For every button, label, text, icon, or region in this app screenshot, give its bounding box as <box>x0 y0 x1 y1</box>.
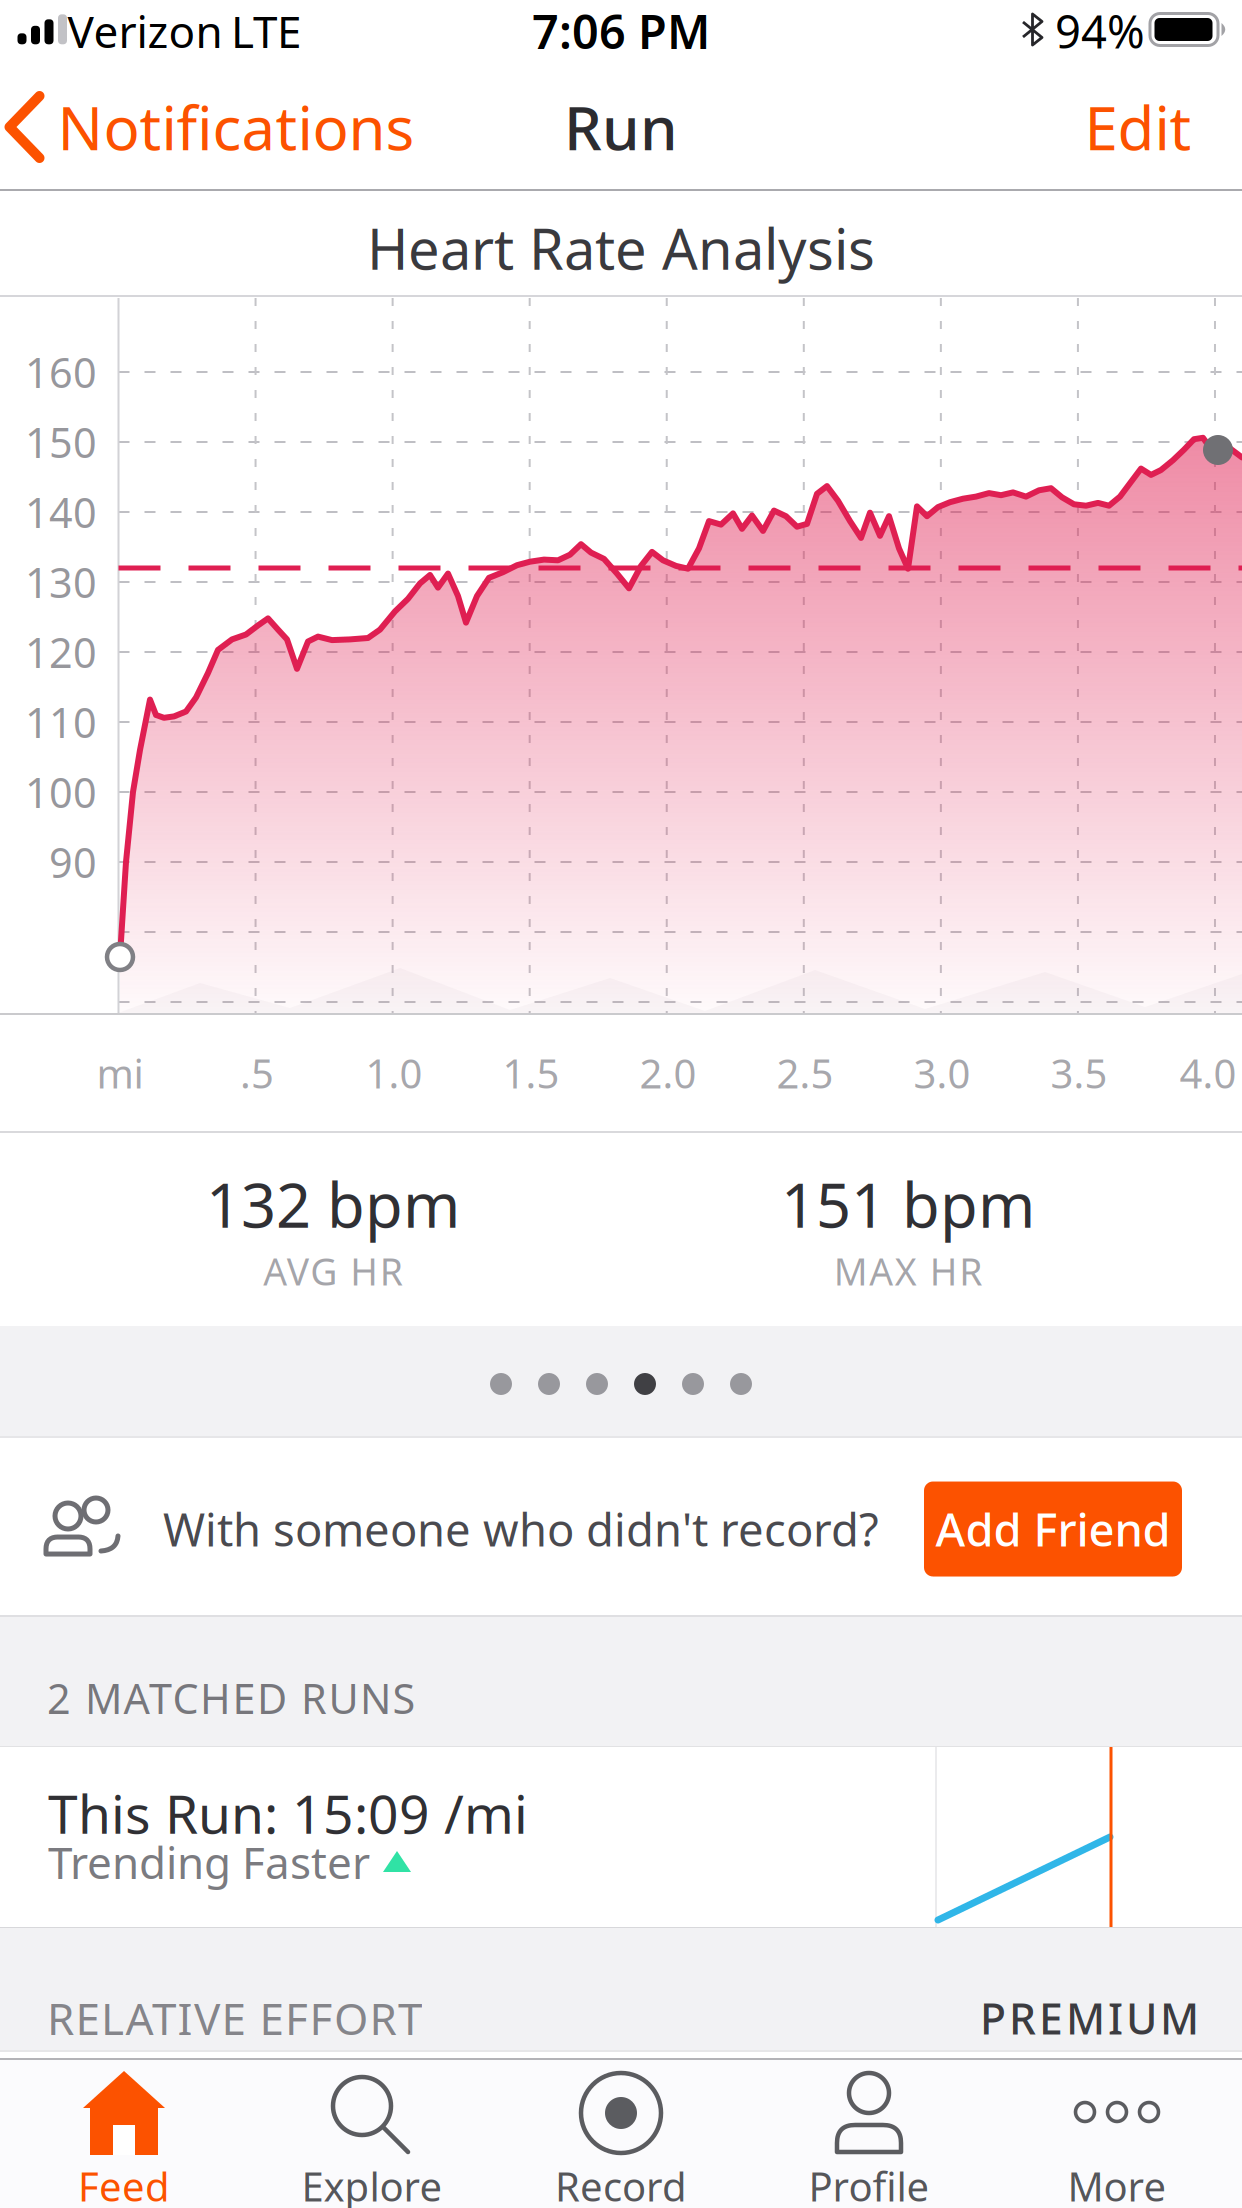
button[interactable]: Feed <box>0 2060 248 2208</box>
button[interactable]: Add Friend <box>924 1481 1182 1576</box>
staticText: Record <box>555 2159 687 2208</box>
staticText: mi <box>96 1046 143 1099</box>
staticText: 130 <box>25 555 97 609</box>
staticText: More <box>1067 2159 1166 2208</box>
staticText: 94% <box>1055 1 1145 61</box>
button[interactable]: Back to Notifications <box>5 87 414 167</box>
staticText: 2.0 <box>639 1046 696 1099</box>
staticText: AVG HR <box>263 1246 403 1296</box>
staticText: 2 MATCHED RUNS <box>47 1671 415 1725</box>
staticText: This Run: 15:09 /mi <box>48 1778 528 1848</box>
button[interactable]: Record <box>497 2060 745 2208</box>
staticText: RELATIVE EFFORT <box>47 1989 422 2047</box>
staticText: Heart Rate Analysis <box>367 211 875 285</box>
staticText: PREMIUM <box>980 1990 1199 2046</box>
staticText: With someone who didn't record? <box>163 1499 879 1559</box>
staticText: 150 <box>25 415 97 469</box>
staticText: 4.0 <box>1179 1046 1236 1099</box>
staticText: Explore <box>301 2159 442 2208</box>
staticText: 110 <box>25 695 97 749</box>
staticText: 1.5 <box>502 1046 559 1099</box>
staticText: Profile <box>808 2159 929 2208</box>
staticText: 100 <box>25 765 97 819</box>
staticText: Feed <box>78 2159 170 2208</box>
staticText: Trending Faster <box>48 1833 370 1891</box>
staticText: Edit <box>1084 87 1191 167</box>
staticText: Verizon <box>67 2 222 60</box>
staticText: 90 <box>49 835 97 889</box>
staticText: 140 <box>25 485 97 539</box>
staticText: 3.5 <box>1050 1046 1107 1099</box>
staticText: Run <box>564 87 678 167</box>
staticText: 3.0 <box>913 1046 970 1099</box>
button[interactable]: Edit <box>1084 87 1191 167</box>
staticText: LTE <box>231 2 301 60</box>
staticText: MAX HR <box>834 1246 982 1296</box>
staticText: 132 bpm <box>206 1163 460 1245</box>
button[interactable]: More <box>993 2060 1241 2208</box>
staticText: 151 bpm <box>781 1163 1035 1245</box>
staticText: 120 <box>25 625 97 679</box>
staticText: 1.0 <box>365 1046 422 1099</box>
staticText: 160 <box>25 345 97 399</box>
button[interactable]: Profile <box>745 2060 993 2208</box>
staticText: Notifications <box>57 87 414 167</box>
staticText: .5 <box>240 1046 274 1099</box>
button[interactable]: This Run: 15:09 /mi <box>0 1747 1242 1927</box>
staticText: Add Friend <box>935 1499 1170 1559</box>
staticText: 7:06 PM <box>532 0 710 62</box>
staticText: 2.5 <box>776 1046 833 1099</box>
button[interactable]: Explore <box>248 2060 496 2208</box>
